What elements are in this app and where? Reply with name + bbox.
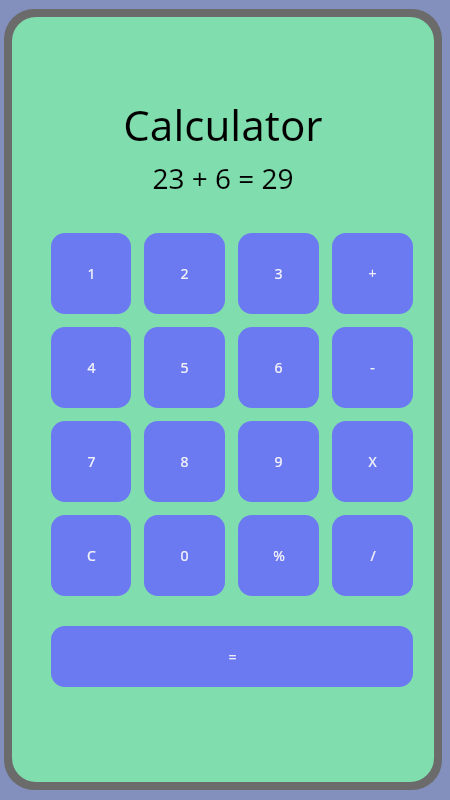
staticText: + <box>368 264 377 283</box>
staticText: 0 <box>180 546 189 565</box>
staticText: / <box>370 546 376 565</box>
button[interactable]: 7 <box>51 421 131 502</box>
staticText: 4 <box>87 358 96 377</box>
staticText: 9 <box>274 452 283 471</box>
staticText: X <box>368 452 377 471</box>
button[interactable]: + <box>332 233 413 314</box>
button[interactable]: 0 <box>144 515 225 596</box>
button[interactable]: 5 <box>144 327 225 408</box>
button[interactable]: C <box>51 515 131 596</box>
staticText: 23 + 6 = 29 <box>12 159 434 197</box>
button[interactable]: 6 <box>238 327 319 408</box>
staticText: 3 <box>274 264 283 283</box>
staticText: 6 <box>274 358 283 377</box>
button[interactable]: 8 <box>144 421 225 502</box>
button[interactable]: 9 <box>238 421 319 502</box>
staticText: 5 <box>180 358 189 377</box>
button[interactable]: 1 <box>51 233 131 314</box>
staticText: C <box>87 546 96 565</box>
button[interactable]: 2 <box>144 233 225 314</box>
staticText: 7 <box>87 452 96 471</box>
staticText: - <box>370 358 375 377</box>
button[interactable]: X <box>332 421 413 502</box>
staticText: % <box>273 546 285 565</box>
staticText: 8 <box>180 452 189 471</box>
button[interactable]: 3 <box>238 233 319 314</box>
staticText: Calculator <box>12 96 434 153</box>
button[interactable]: % <box>238 515 319 596</box>
staticText: 1 <box>87 264 96 283</box>
button[interactable]: = <box>51 626 413 687</box>
staticText: 2 <box>180 264 189 283</box>
staticText: = <box>228 647 237 666</box>
button[interactable]: - <box>332 327 413 408</box>
button[interactable]: / <box>332 515 413 596</box>
button[interactable]: 4 <box>51 327 131 408</box>
